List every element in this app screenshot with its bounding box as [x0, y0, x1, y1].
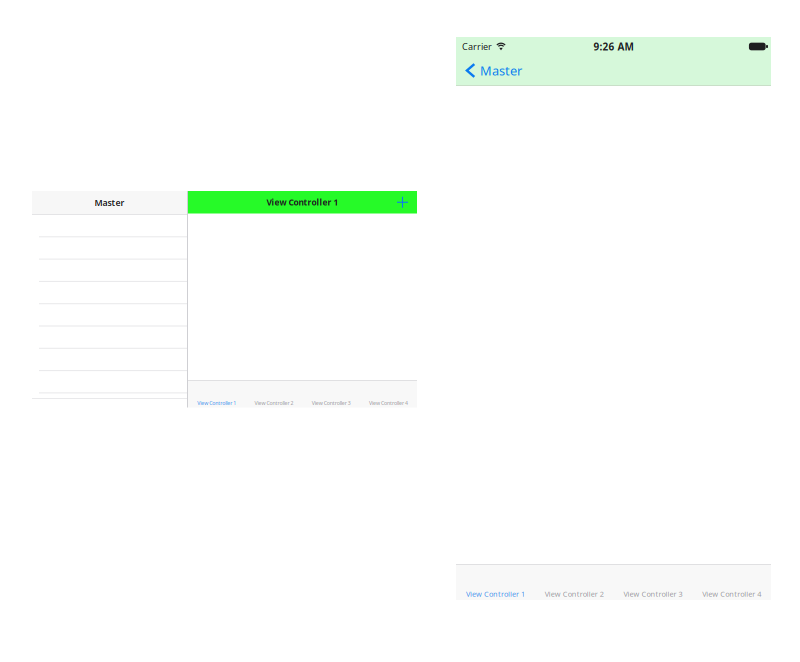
button[interactable]: Empty row: [32, 326, 187, 349]
button[interactable]: Master: [456, 55, 534, 85]
staticText: View Controller 4: [369, 399, 408, 406]
button[interactable]: View Controller 2: [535, 565, 614, 600]
button[interactable]: Add: [397, 191, 417, 213]
staticText: View Controller 2: [545, 589, 604, 599]
button[interactable]: View Controller 3: [302, 381, 360, 407]
staticText: View Controller 1: [466, 589, 525, 599]
button[interactable]: Empty row: [32, 237, 187, 260]
button[interactable]: Empty row: [32, 215, 187, 237]
staticText: View Controller 1: [266, 196, 338, 208]
staticText: Master: [94, 196, 124, 208]
staticText: View Controller 4: [702, 589, 761, 599]
button[interactable]: Empty row: [32, 349, 187, 371]
staticText: View Controller 1: [197, 399, 236, 406]
staticText: View Controller 3: [623, 589, 682, 599]
button[interactable]: Empty row: [32, 260, 187, 282]
staticText: Master: [480, 62, 522, 79]
button[interactable]: View Controller 2: [245, 381, 302, 407]
button[interactable]: View Controller 4: [692, 565, 771, 600]
staticText: View Controller 2: [254, 399, 293, 406]
button[interactable]: View Controller 1: [456, 565, 535, 600]
button[interactable]: View Controller 1: [188, 381, 245, 407]
staticText: 9:26 AM: [593, 40, 633, 53]
staticText: Carrier: [462, 40, 492, 53]
staticText: View Controller 3: [312, 399, 351, 406]
button[interactable]: View Controller 4: [360, 381, 417, 407]
button[interactable]: Empty row: [32, 282, 187, 304]
button[interactable]: View Controller 3: [613, 565, 692, 600]
